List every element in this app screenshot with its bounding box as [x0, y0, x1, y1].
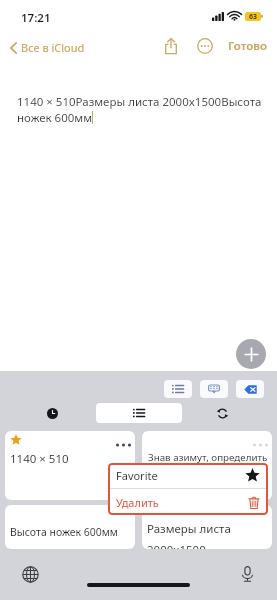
- staticText: 17:21: [21, 10, 51, 26]
- button[interactable]: More options: [192, 33, 218, 59]
- button[interactable]: Все в iCloud: [7, 36, 88, 59]
- staticText: Favorite: [116, 468, 158, 483]
- button[interactable]: Lists: [96, 403, 182, 423]
- button[interactable]: Высота ножек 600мм: [5, 505, 135, 549]
- staticText: 63: [249, 12, 258, 21]
- button[interactable]: Format list: [164, 380, 192, 398]
- staticText: 1140 × 510: [10, 451, 69, 467]
- button[interactable]: Знав азимут, определить: [142, 431, 272, 500]
- staticText: Высота ножек 600мм: [10, 525, 118, 539]
- staticText: Знав азимут, определить: [148, 451, 268, 464]
- button[interactable]: Размеры листа 2000x1500: [142, 505, 272, 549]
- button[interactable]: Switch keyboard language: [20, 564, 40, 584]
- button[interactable]: Delete: [236, 380, 264, 398]
- button[interactable]: Add: [236, 339, 266, 369]
- button[interactable]: Refresh: [212, 403, 232, 423]
- button[interactable]: Favorite: [108, 463, 268, 488]
- staticText: Удалить: [116, 495, 159, 510]
- button[interactable]: Готово: [225, 33, 270, 59]
- button[interactable]: Recently used: [42, 403, 62, 423]
- staticText: 1140 × 510Размеры листа 2000x1500Высота …: [17, 94, 264, 125]
- button[interactable]: Keyboard: [200, 380, 228, 398]
- button[interactable]: Dictate: [237, 564, 257, 584]
- staticText: Размеры листа 2000x1500: [147, 521, 231, 549]
- button[interactable]: Share: [158, 33, 184, 59]
- button[interactable]: Card options: [114, 436, 132, 454]
- staticText: Готово: [228, 38, 267, 54]
- button[interactable]: Card options: [251, 436, 269, 454]
- button[interactable]: Удалить: [108, 489, 268, 515]
- staticText: Все в iCloud: [21, 40, 85, 55]
- button[interactable]: 1140 × 510: [5, 431, 135, 500]
